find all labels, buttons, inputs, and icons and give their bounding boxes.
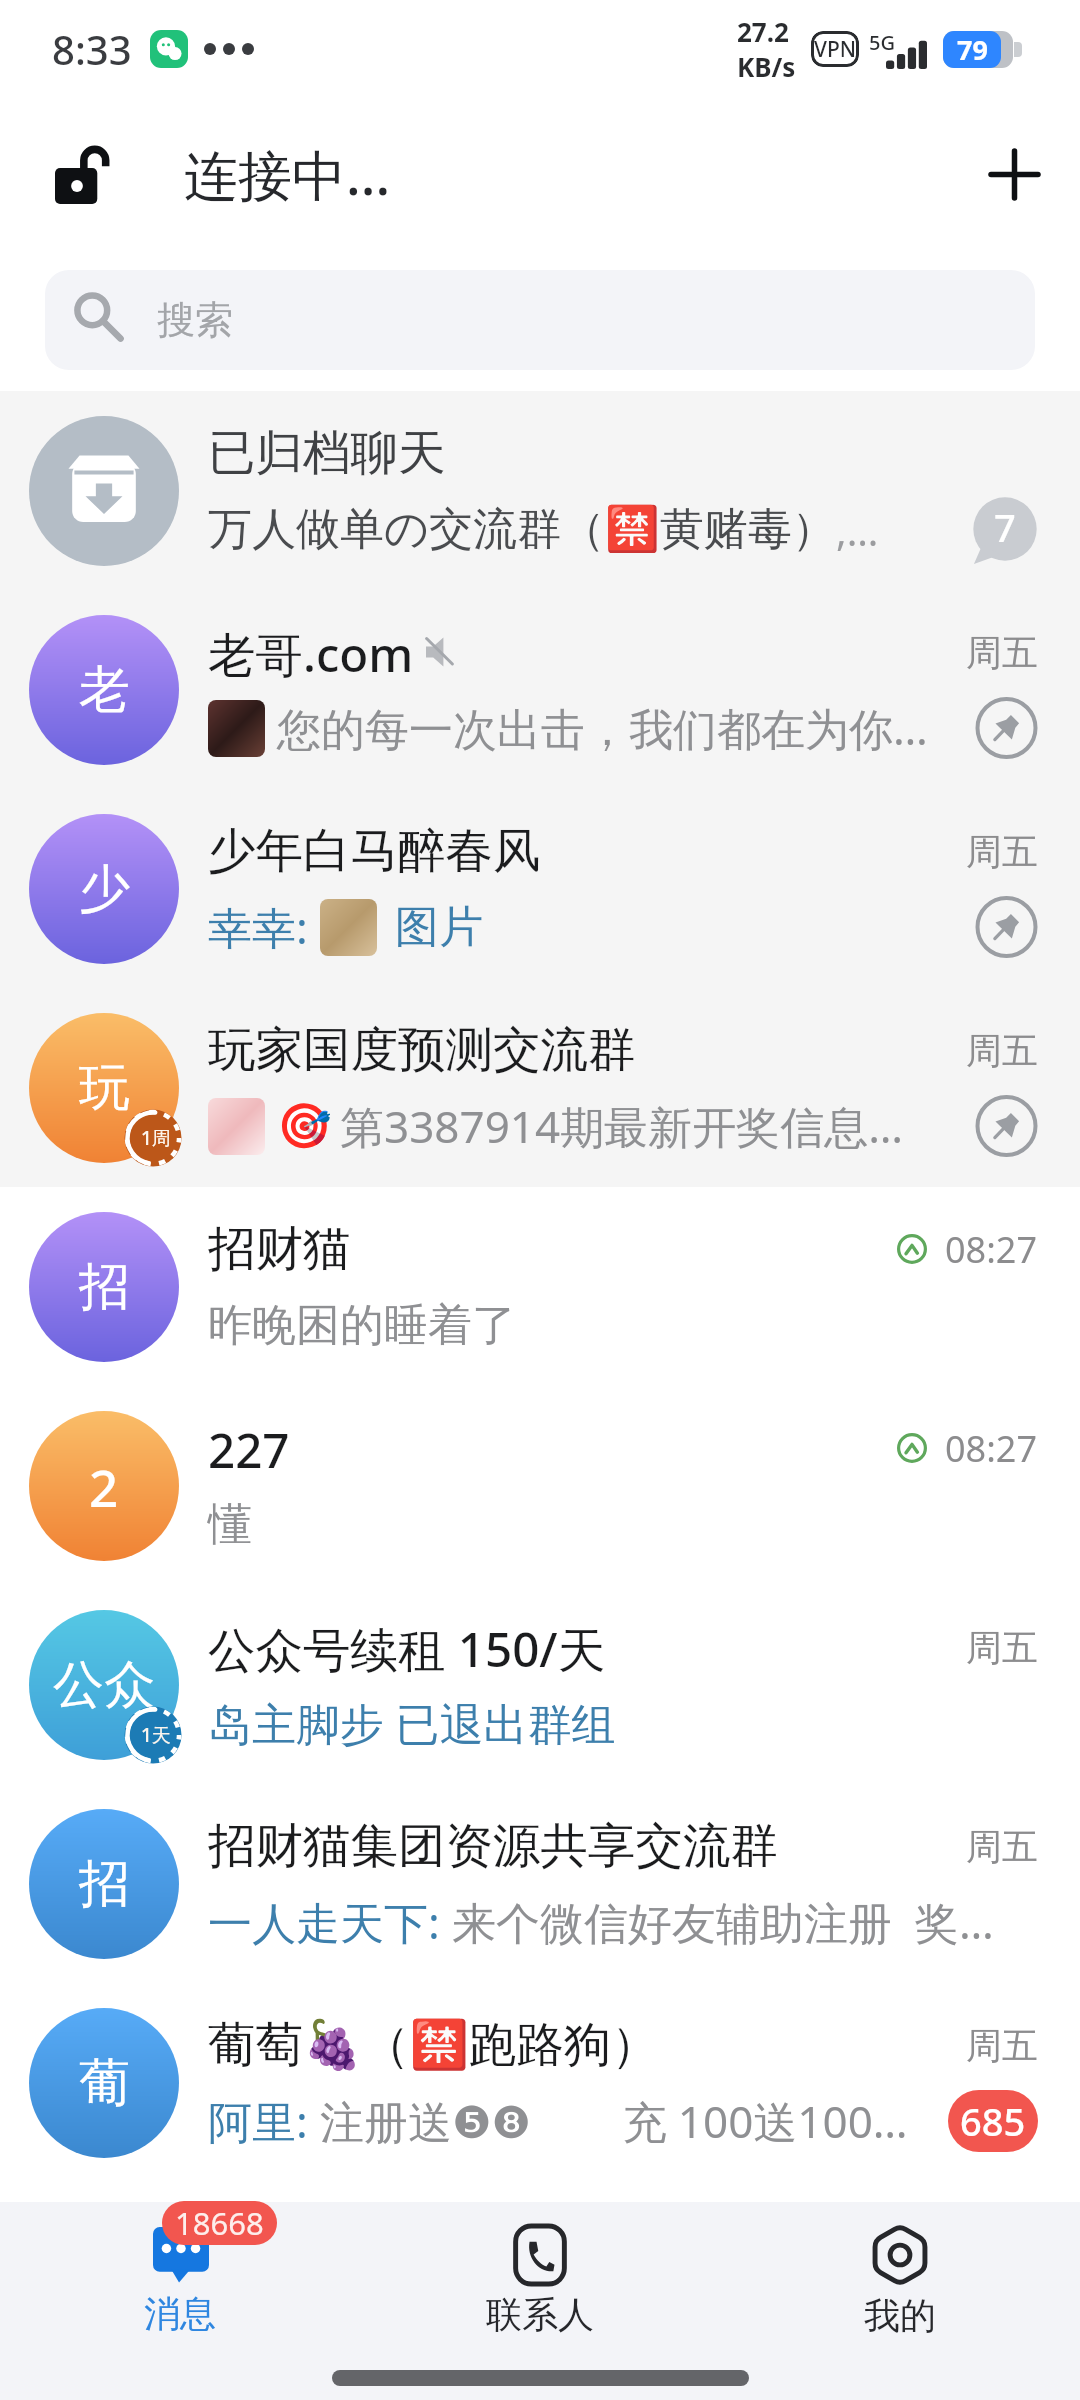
staticText: 我的 bbox=[864, 2293, 936, 2338]
staticText: 79 bbox=[957, 31, 988, 68]
button[interactable]: 招 bbox=[0, 1187, 1080, 1386]
button[interactable]: 招 bbox=[0, 1784, 1080, 1983]
staticText: 老哥.com bbox=[208, 621, 414, 683]
staticText: 昨晚困的睡着了 bbox=[208, 1298, 516, 1353]
staticText: 685 bbox=[960, 2095, 1026, 2147]
staticText: 消息 bbox=[144, 2291, 216, 2336]
staticText: 少 bbox=[79, 857, 130, 921]
staticText: 已归档聊天 bbox=[208, 423, 446, 483]
button[interactable]: New chat bbox=[969, 129, 1059, 219]
button[interactable]: 葡 bbox=[0, 1983, 1080, 2182]
staticText: 一人走天下: bbox=[208, 1892, 452, 1952]
button[interactable]: 玩 bbox=[0, 988, 1080, 1187]
staticText: 1天 bbox=[141, 1722, 171, 1748]
staticText: 来个微信好友辅助注册 奖… bbox=[452, 1892, 994, 1952]
staticText: ,… bbox=[836, 503, 879, 557]
staticText: 您的每一次出击，我们都在为你… bbox=[277, 698, 928, 758]
staticText: 连接中... bbox=[184, 137, 391, 211]
staticText: 周五 bbox=[966, 829, 1038, 874]
button[interactable]: Connection status, unlocked bbox=[39, 130, 127, 218]
button[interactable]: 联系人 bbox=[360, 2202, 720, 2360]
staticText: 幸幸: bbox=[208, 897, 320, 957]
staticText: KB/s bbox=[737, 49, 796, 84]
button[interactable]: 我的 bbox=[720, 2202, 1080, 2360]
button[interactable]: 已归档聊天 bbox=[0, 391, 1080, 590]
staticText: 搜索 bbox=[157, 296, 233, 344]
staticText: 招 bbox=[79, 1852, 130, 1916]
staticText: 玩 bbox=[79, 1056, 130, 1120]
staticText: 招财猫集团资源共享交流群 bbox=[208, 1816, 778, 1876]
staticText: 08:27 bbox=[945, 1424, 1038, 1473]
button[interactable]: 老 bbox=[0, 590, 1080, 789]
staticText: 万人做单の交流群（🈲黄赌毒） bbox=[208, 502, 836, 557]
staticText: 玩家国度预测交流群 bbox=[208, 1020, 636, 1080]
staticText: 18668 bbox=[175, 2202, 264, 2244]
staticText: 懂 bbox=[208, 1497, 252, 1552]
staticText: 葡 bbox=[79, 2051, 130, 2115]
staticText: 岛主脚步 已退出群组 bbox=[208, 1693, 616, 1753]
button[interactable]: 少 bbox=[0, 789, 1080, 988]
staticText: 5G bbox=[869, 29, 895, 56]
staticText: 周五 bbox=[966, 2023, 1038, 2068]
staticText: 招 bbox=[79, 1255, 130, 1319]
staticText: 阿里: bbox=[208, 2091, 320, 2151]
staticText: 联系人 bbox=[486, 2292, 594, 2337]
staticText: 27.2 bbox=[737, 14, 789, 49]
staticText: 周五 bbox=[966, 1824, 1038, 1869]
staticText: 注册送❺❽ 充 100送100… bbox=[320, 2091, 908, 2151]
staticText: 8:33 bbox=[52, 22, 132, 76]
button[interactable]: 搜索 bbox=[45, 270, 1035, 370]
button[interactable]: 18668 bbox=[0, 2202, 360, 2360]
staticText: 08:27 bbox=[945, 1225, 1038, 1274]
staticText: 7 bbox=[994, 501, 1016, 553]
staticText: 🎯 bbox=[277, 1100, 332, 1152]
staticText: 227 bbox=[208, 1417, 290, 1479]
staticText: 图片 bbox=[395, 900, 483, 955]
button[interactable]: 公众 bbox=[0, 1585, 1080, 1784]
button[interactable]: 2 bbox=[0, 1386, 1080, 1585]
staticText: 2 bbox=[89, 1452, 119, 1521]
staticText: 老 bbox=[79, 658, 130, 722]
staticText: VPN bbox=[814, 35, 857, 64]
staticText: 少年白马醉春风 bbox=[208, 821, 541, 881]
staticText: 第3387914期最新开奖信息… bbox=[340, 1096, 903, 1156]
staticText: 1周 bbox=[141, 1125, 171, 1151]
staticText: 招财猫 bbox=[208, 1219, 351, 1279]
staticText: 公众 bbox=[53, 1653, 155, 1717]
staticText: 周五 bbox=[966, 1625, 1038, 1670]
staticText: 公众号续租 150/天 bbox=[208, 1616, 606, 1678]
staticText: 葡萄🍇（🈲跑路狗） bbox=[208, 2015, 659, 2075]
staticText: 周五 bbox=[966, 630, 1038, 675]
staticText: 周五 bbox=[966, 1028, 1038, 1073]
